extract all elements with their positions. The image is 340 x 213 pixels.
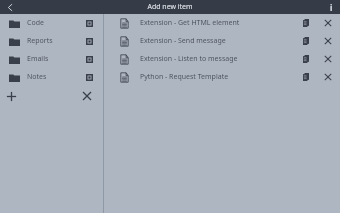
staticText: Reports: [27, 36, 86, 46]
staticText: Code: [27, 18, 86, 28]
staticText: Add new item: [147, 2, 193, 12]
staticText: Emails: [27, 54, 86, 64]
button[interactable]: Remove: [319, 14, 337, 32]
button[interactable]: Extension - Send message: [104, 32, 340, 50]
button[interactable]: Extension - Get HTML element: [104, 14, 340, 32]
button[interactable]: Extension - Listen to message: [104, 50, 340, 68]
button[interactable]: Emails: [0, 50, 103, 68]
button[interactable]: Python - Request Template: [104, 68, 340, 86]
button[interactable]: Add: [0, 86, 22, 106]
button[interactable]: Reports: [0, 32, 103, 50]
button[interactable]: Code: [0, 14, 103, 32]
button[interactable]: Remove: [319, 68, 337, 86]
staticText: Notes: [27, 72, 86, 82]
staticText: i: [330, 2, 333, 13]
button[interactable]: Close: [76, 86, 98, 106]
button[interactable]: Copy: [298, 32, 314, 50]
button[interactable]: Notes: [0, 68, 103, 86]
button[interactable]: Copy: [298, 14, 314, 32]
staticText: Python - Request Template: [140, 72, 298, 82]
staticText: Extension - Get HTML element: [140, 18, 298, 28]
button[interactable]: Info: [322, 0, 340, 14]
staticText: Extension - Send message: [140, 36, 298, 46]
button[interactable]: Copy: [298, 50, 314, 68]
button[interactable]: Remove: [319, 50, 337, 68]
staticText: Extension - Listen to message: [140, 54, 298, 64]
button[interactable]: Back: [0, 0, 20, 14]
button[interactable]: Copy: [298, 68, 314, 86]
button[interactable]: Remove: [319, 32, 337, 50]
